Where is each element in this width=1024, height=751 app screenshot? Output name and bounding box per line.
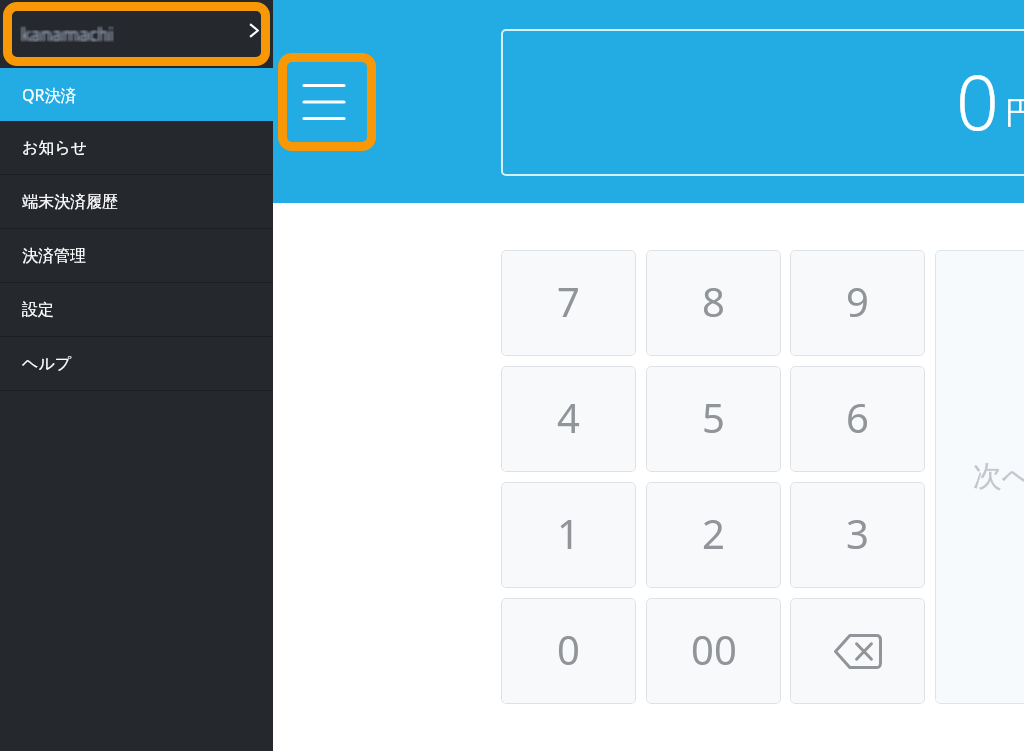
staticText: kanamachi: [20, 22, 113, 47]
button[interactable]: 決済管理: [0, 229, 273, 282]
staticText: 0: [557, 622, 580, 676]
staticText: 2: [702, 506, 725, 560]
staticText: kanamachi: [23, 22, 116, 47]
staticText: ヘルプ: [22, 354, 72, 374]
staticText: 決済管理: [22, 246, 86, 266]
button[interactable]: QR決済: [0, 68, 273, 121]
button[interactable]: お知らせ: [0, 121, 273, 174]
staticText: QR決済: [22, 84, 77, 106]
button[interactable]: 00: [646, 598, 781, 704]
staticText: 6: [846, 390, 869, 444]
staticText: 端末決済履歴: [22, 192, 118, 212]
button[interactable]: 6: [790, 366, 925, 472]
button[interactable]: 端末決済履歴: [0, 175, 273, 228]
staticText: kanamachi: [21, 23, 114, 48]
button[interactable]: 7: [501, 250, 636, 356]
staticText: 4: [557, 390, 580, 444]
button[interactable]: kanamachi: [12, 11, 261, 57]
staticText: 設定: [22, 300, 54, 320]
staticText: 9: [846, 274, 869, 328]
button[interactable]: 4: [501, 366, 636, 472]
button[interactable]: Open navigation menu: [278, 53, 376, 151]
button[interactable]: 8: [646, 250, 781, 356]
button[interactable]: 3: [790, 482, 925, 588]
staticText: kanamachi: [21, 21, 114, 46]
button[interactable]: Amount: [501, 29, 1024, 176]
staticText: 5: [702, 390, 725, 444]
staticText: kanamachi: [20, 21, 113, 46]
staticText: 7: [557, 274, 580, 328]
button[interactable]: 0: [501, 598, 636, 704]
staticText: お知らせ: [22, 138, 88, 158]
button[interactable]: 次へ: [935, 250, 1024, 704]
staticText: kanamachi: [21, 22, 114, 47]
staticText: kanamachi: [23, 21, 116, 46]
button[interactable]: 2: [646, 482, 781, 588]
staticText: kanamachi: [19, 23, 112, 48]
button[interactable]: 1: [501, 482, 636, 588]
staticText: kanamachi: [22, 21, 115, 46]
staticText: kanamachi: [23, 23, 116, 48]
staticText: 00: [691, 622, 737, 676]
button[interactable]: ヘルプ: [0, 337, 273, 390]
staticText: 円: [1005, 93, 1024, 132]
staticText: 次へ: [973, 458, 1024, 495]
staticText: 3: [846, 506, 869, 560]
staticText: kanamachi: [19, 21, 112, 46]
staticText: kanamachi: [19, 22, 112, 47]
button[interactable]: Backspace: [790, 598, 925, 704]
button[interactable]: 設定: [0, 283, 273, 336]
staticText: kanamachi: [22, 23, 115, 48]
staticText: 8: [702, 274, 725, 328]
button[interactable]: 5: [646, 366, 781, 472]
staticText: 1: [557, 506, 580, 560]
staticText: kanamachi: [22, 22, 115, 47]
button[interactable]: 9: [790, 250, 925, 356]
staticText: kanamachi: [20, 23, 113, 48]
staticText: 0: [956, 50, 999, 152]
